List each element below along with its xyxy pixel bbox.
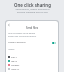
staticText: One click sharing [14,2,51,8]
staticText: Visible to everyone [8,41,26,44]
staticText: Pixel 7 [11,56,17,59]
button[interactable]: MacBook [6,63,58,67]
button[interactable]: Pixel 7 [6,55,58,59]
staticText: MacBook [11,64,20,67]
button[interactable]: Visible to everyone [6,40,58,45]
button[interactable]: Home TV [6,67,58,71]
staticText: Send photos, videos and files to anyone … [15,8,50,14]
button[interactable]: Back [7,23,10,26]
staticText: Nearby [8,48,15,51]
staticText: Send files [6,26,58,30]
button[interactable]: Tab S9 [6,59,58,63]
staticText: Home TV [11,68,20,71]
staticText: Tab S9 [11,60,17,63]
staticText: Turn on visibility so the people around … [8,32,56,38]
